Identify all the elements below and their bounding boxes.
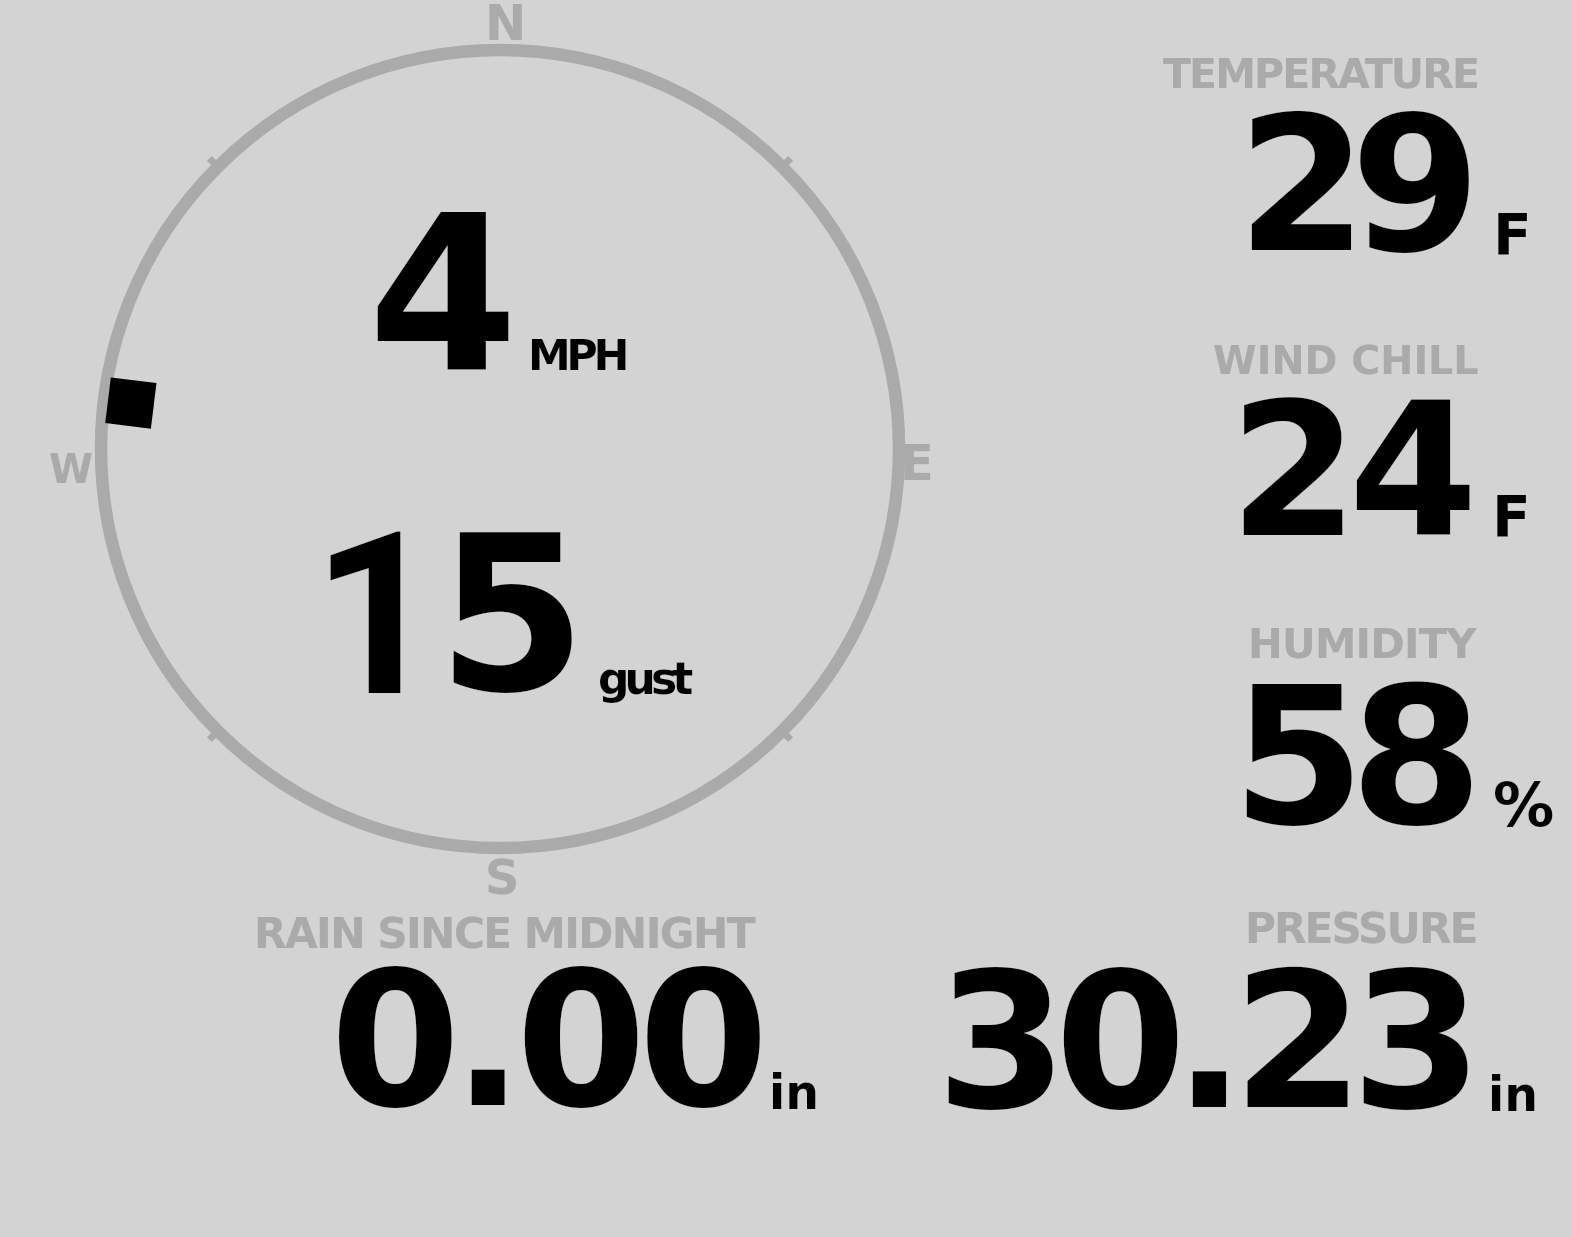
staticText: W	[49, 446, 94, 493]
staticText: 24	[1229, 362, 1468, 579]
staticText: 4	[368, 170, 519, 421]
button[interactable]: Wind direction dial	[0, 0, 1002, 900]
staticText: HUMIDITY	[1248, 619, 1476, 667]
staticText: gust	[598, 653, 689, 704]
staticText: 1	[312, 484, 442, 748]
staticText: 58	[1232, 646, 1469, 868]
staticText: RAIN SINCE MIDNIGHT	[254, 909, 754, 958]
staticText: MPH	[528, 330, 626, 380]
staticText: WIND CHILL	[1213, 337, 1479, 383]
button[interactable]: TEMPERATURE	[1002, 0, 1571, 286]
button[interactable]: RAIN SINCE MIDNIGHT	[0, 900, 1002, 1237]
staticText: 0.00	[330, 931, 761, 1149]
staticText: in	[1488, 1067, 1539, 1122]
staticText: TEMPERATURE	[1163, 50, 1479, 98]
staticText: S	[485, 850, 520, 905]
staticText: F	[1492, 484, 1531, 550]
button[interactable]: PRESSURE	[1002, 856, 1571, 1237]
staticText: 30.23	[936, 931, 1470, 1151]
staticText: N	[485, 0, 527, 51]
staticText: %	[1493, 769, 1555, 840]
staticText: E	[900, 434, 934, 491]
button[interactable]: WIND CHILL	[1002, 286, 1571, 571]
staticText: 29	[1237, 76, 1464, 294]
staticText: 5	[437, 490, 587, 741]
staticText: in	[769, 1065, 820, 1120]
button[interactable]: HUMIDITY	[1002, 571, 1571, 856]
staticText: PRESSURE	[1245, 904, 1477, 953]
staticText: F	[1493, 202, 1532, 268]
